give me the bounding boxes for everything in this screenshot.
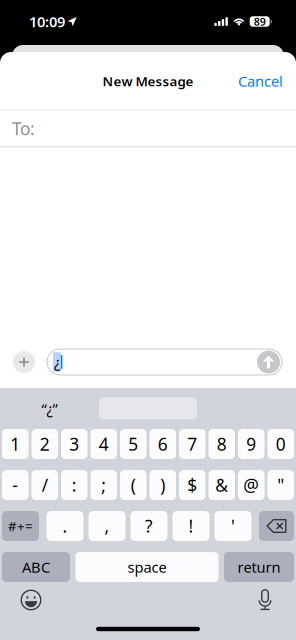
button[interactable]: 3 <box>61 429 87 459</box>
staticText: 6 <box>158 432 168 455</box>
staticText: ) <box>160 473 165 496</box>
staticText: $ <box>187 473 197 496</box>
button[interactable]: $ <box>179 470 205 500</box>
button[interactable]: & <box>208 470 235 500</box>
staticText: “¿” <box>41 399 57 418</box>
staticText: & <box>215 473 228 496</box>
button[interactable]: ) <box>149 470 176 500</box>
button[interactable]: “¿” <box>0 394 99 422</box>
staticText: , <box>104 514 109 537</box>
button[interactable]: 9 <box>238 429 264 459</box>
button[interactable]: 1 <box>2 429 28 459</box>
staticText: ¿ <box>54 352 60 372</box>
button[interactable]: return <box>224 552 294 582</box>
staticText: 9 <box>246 432 256 455</box>
button[interactable]: #+= <box>2 511 39 541</box>
button[interactable]: ' <box>214 511 251 541</box>
staticText: 3 <box>69 432 79 455</box>
button[interactable]: 8 <box>208 429 235 459</box>
button[interactable]: @ <box>238 470 264 500</box>
button[interactable]: 0 <box>267 429 294 459</box>
button[interactable]: Add attachment <box>13 351 35 373</box>
staticText: 5 <box>128 432 138 455</box>
button[interactable]: Emoji keyboard <box>11 584 51 616</box>
button[interactable]: Dictate <box>245 584 285 616</box>
staticText: #+= <box>8 517 33 535</box>
staticText: ; <box>101 473 106 496</box>
staticText: " <box>277 473 284 496</box>
staticText: 0 <box>276 432 286 455</box>
staticText: ! <box>188 514 193 537</box>
staticText: To: <box>12 117 35 140</box>
staticText: / <box>42 473 48 496</box>
button[interactable]: 4 <box>90 429 117 459</box>
button[interactable]: / <box>31 470 58 500</box>
staticText: . <box>62 514 67 537</box>
staticText: ( <box>131 473 136 496</box>
button[interactable]: " <box>267 470 294 500</box>
staticText: 10:09 <box>29 12 65 31</box>
staticText: 1 <box>10 432 20 455</box>
button[interactable]: - <box>2 470 28 500</box>
staticText: 4 <box>99 432 109 455</box>
staticText: space <box>127 557 166 577</box>
button[interactable]: 6 <box>149 429 176 459</box>
staticText: : <box>72 473 77 496</box>
staticText: - <box>12 473 18 496</box>
button[interactable]: . <box>46 511 83 541</box>
staticText: ABC <box>22 557 50 577</box>
staticText: 2 <box>40 432 50 455</box>
button[interactable]: ( <box>120 470 146 500</box>
button[interactable]: Cancel <box>225 62 296 100</box>
button[interactable]: ; <box>90 470 117 500</box>
button[interactable]: , <box>88 511 125 541</box>
button[interactable]: ! <box>172 511 209 541</box>
button[interactable]: : <box>61 470 87 500</box>
button[interactable]: ? <box>130 511 167 541</box>
staticText: New Message <box>102 72 193 90</box>
button[interactable]: ABC <box>2 552 70 582</box>
staticText: 89 <box>254 14 266 29</box>
button[interactable]: Delete <box>259 511 294 541</box>
staticText: 8 <box>217 432 227 455</box>
staticText: return <box>237 557 280 577</box>
button[interactable]: 5 <box>120 429 146 459</box>
staticText: ? <box>145 514 153 537</box>
button[interactable]: 7 <box>179 429 205 459</box>
button[interactable]: To: <box>0 111 296 147</box>
staticText: ' <box>231 514 235 537</box>
button[interactable]: space <box>75 552 218 582</box>
staticText: Cancel <box>238 71 283 91</box>
staticText: 7 <box>187 432 197 455</box>
staticText: @ <box>243 473 259 496</box>
button[interactable]: 2 <box>31 429 58 459</box>
